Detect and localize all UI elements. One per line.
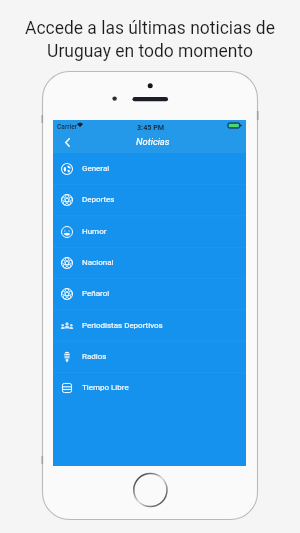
staticText: Peñarol: [82, 289, 110, 298]
staticText: Noticias: [136, 136, 170, 147]
button[interactable]: Radios: [53, 341, 246, 372]
staticText: Nacional: [82, 258, 114, 267]
staticText: 3:45 PM: [137, 123, 165, 131]
staticText: Carrier: [57, 123, 78, 131]
button[interactable]: Deportes: [53, 184, 246, 215]
staticText: Deportes: [82, 195, 115, 204]
staticText: Tiempo Libre: [82, 383, 129, 392]
button[interactable]: Humor: [53, 216, 246, 247]
button[interactable]: General: [53, 153, 246, 184]
button[interactable]: Back: [53, 133, 77, 153]
button[interactable]: Peñarol: [53, 278, 246, 309]
staticText: General: [82, 164, 110, 173]
button[interactable]: Nacional: [53, 247, 246, 278]
staticText: Radios: [82, 352, 107, 361]
button[interactable]: Periodistas Deportivos: [53, 310, 246, 341]
staticText: Periodistas Deportivos: [82, 321, 163, 330]
button[interactable]: Tiempo Libre: [53, 372, 246, 403]
staticText: Humor: [82, 227, 107, 236]
staticText: Accede a las últimas noticias de Uruguay…: [25, 18, 275, 61]
